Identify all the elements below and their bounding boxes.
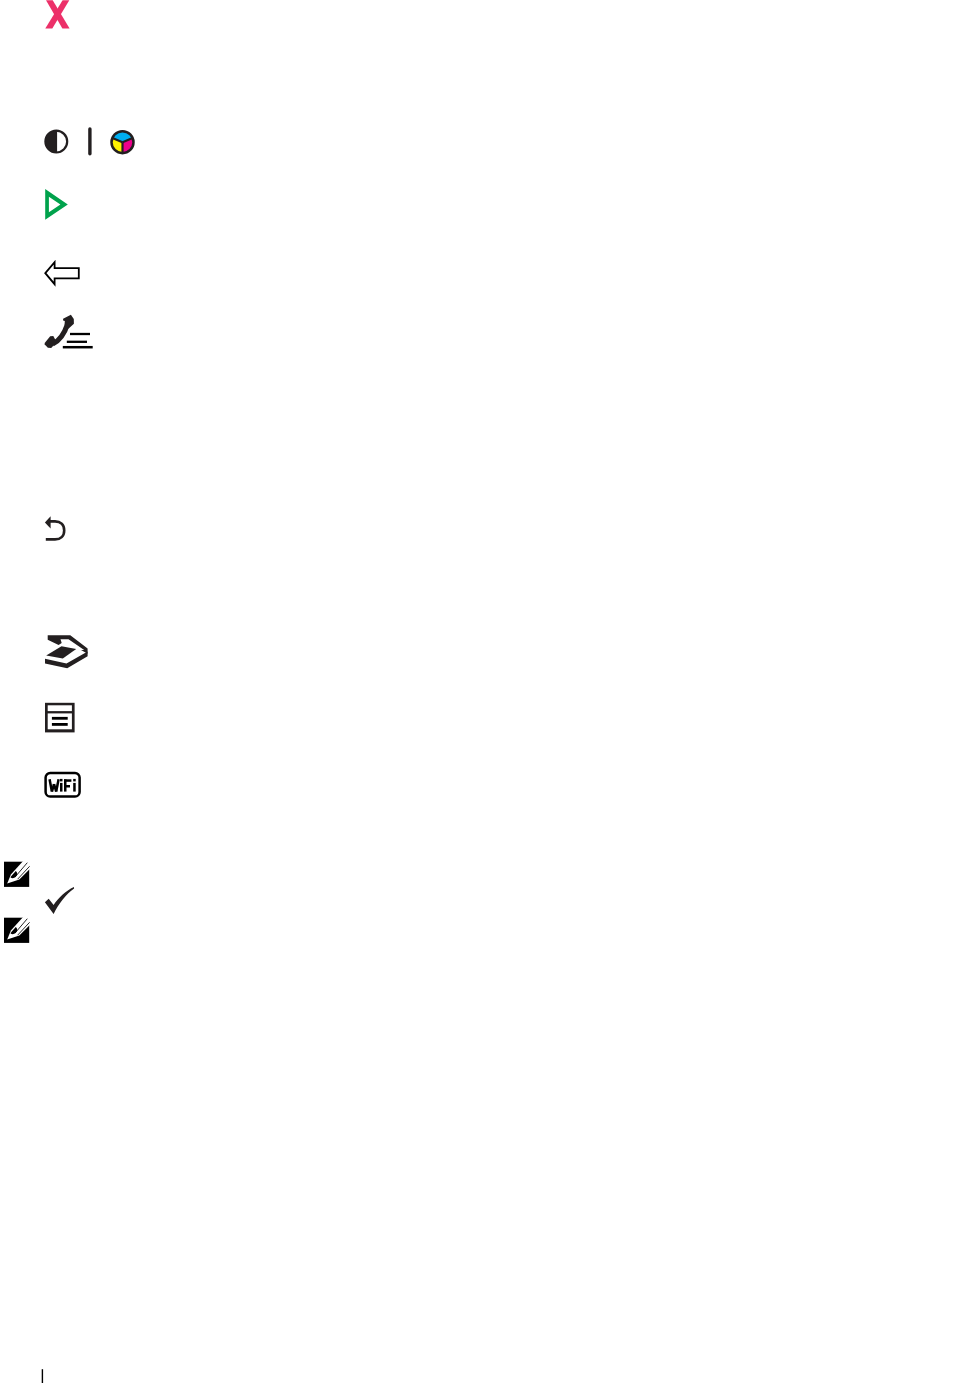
button[interactable]: Undo [42,513,68,543]
button[interactable]: Checked [43,885,77,916]
button[interactable]: Separator [85,124,95,158]
button[interactable]: Menu [43,701,77,735]
button[interactable]: Colour print [109,129,137,157]
button[interactable]: Fax [42,312,96,352]
button[interactable]: Wi-Fi [43,771,83,799]
button[interactable]: Start [42,186,72,224]
button[interactable]: Cancel [38,0,78,32]
button[interactable]: Scan [43,633,91,671]
button[interactable]: Note [4,917,32,944]
button[interactable]: Black and white print [43,127,69,157]
button[interactable]: Note [4,861,32,888]
button[interactable]: Back [42,259,82,289]
